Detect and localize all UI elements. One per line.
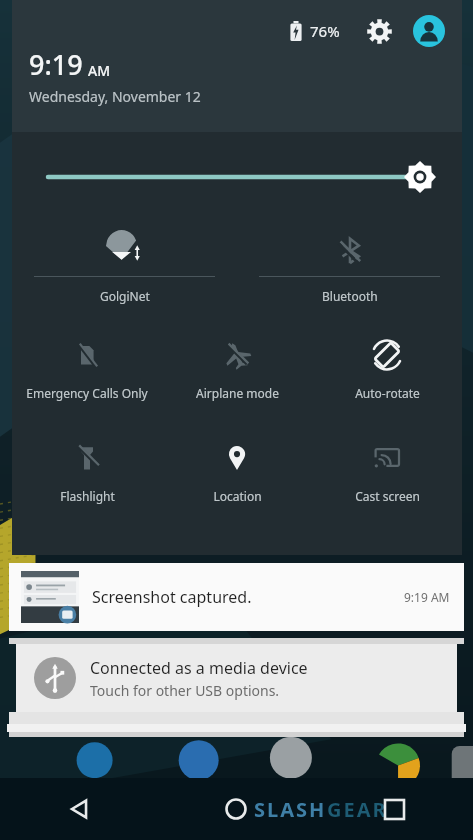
staticText: 9:19 AM <box>404 589 450 605</box>
staticText: Location <box>213 488 262 504</box>
staticText: GEAR <box>327 796 388 823</box>
staticText: GolgiNet <box>100 288 150 304</box>
button[interactable]: Back <box>0 778 157 840</box>
staticText: Touch for other USB options. <box>90 681 280 700</box>
staticText: AM <box>88 61 111 80</box>
staticText: Auto-rotate <box>355 385 420 401</box>
staticText: Screenshot captured. <box>92 586 252 608</box>
staticText: Cast screen <box>355 488 420 504</box>
button[interactable]: Brightness <box>12 132 462 222</box>
staticText: 76% <box>310 21 340 41</box>
button[interactable]: Screenshot captured. <box>9 563 464 631</box>
button[interactable]: Cast screen <box>312 425 462 528</box>
button[interactable]: Emergency Calls Only <box>12 322 162 425</box>
button[interactable]: Recent apps <box>315 778 473 840</box>
button[interactable]: Connected as a media device <box>16 644 457 712</box>
staticText: Airplane mode <box>196 385 279 401</box>
staticText: Emergency Calls Only <box>26 385 148 401</box>
staticText: Connected as a media device <box>90 657 308 679</box>
staticText: 9:19 <box>29 46 83 83</box>
button[interactable]: Airplane mode <box>162 322 312 425</box>
button[interactable]: GolgiNet <box>12 222 237 322</box>
button[interactable]: User profile <box>412 14 446 48</box>
button[interactable]: Location <box>162 425 312 528</box>
button[interactable]: Flashlight <box>12 425 162 528</box>
button[interactable]: Bluetooth <box>237 222 462 322</box>
button[interactable]: Home <box>157 778 315 840</box>
staticText: SLASH <box>254 796 327 823</box>
staticText: Flashlight <box>60 488 115 504</box>
button[interactable]: Settings <box>362 14 396 48</box>
button[interactable]: Auto-rotate <box>312 322 462 425</box>
staticText: Wednesday, November 12 <box>29 87 201 106</box>
staticText: Bluetooth <box>322 288 378 304</box>
